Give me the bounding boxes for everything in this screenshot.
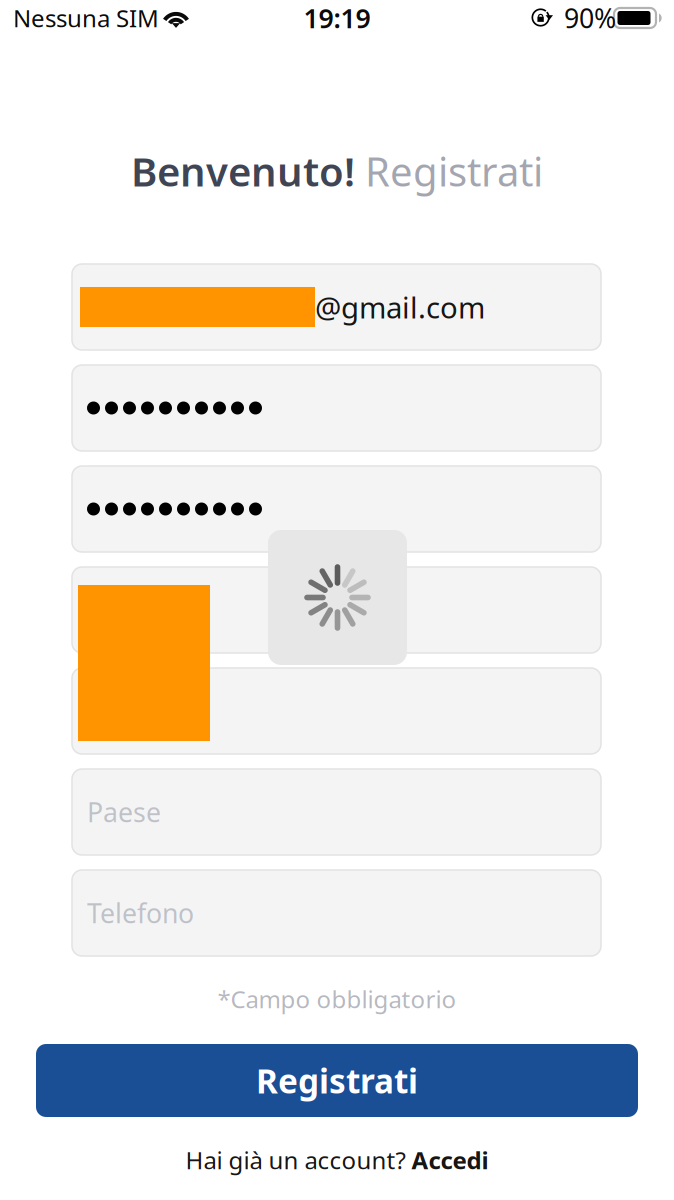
staticText: Nessuna SIM bbox=[13, 2, 159, 34]
staticText: Telefono bbox=[87, 895, 194, 931]
staticText: Registrati bbox=[355, 144, 543, 197]
staticText: 90% bbox=[564, 0, 616, 36]
staticText: Accedi bbox=[411, 1144, 488, 1176]
staticText: Paese bbox=[87, 794, 161, 830]
staticText: Hai già un account? bbox=[185, 1144, 411, 1176]
staticText: @gmail.com bbox=[315, 287, 485, 326]
staticText: Registrati bbox=[256, 1058, 418, 1103]
staticText: Benvenuto! bbox=[131, 144, 355, 197]
staticText: *Campo obbligatorio bbox=[217, 983, 456, 1015]
button[interactable]: Registrati bbox=[36, 1044, 638, 1117]
button[interactable]: Hai già un account? bbox=[0, 1140, 674, 1180]
staticText: 19:19 bbox=[303, 0, 370, 36]
